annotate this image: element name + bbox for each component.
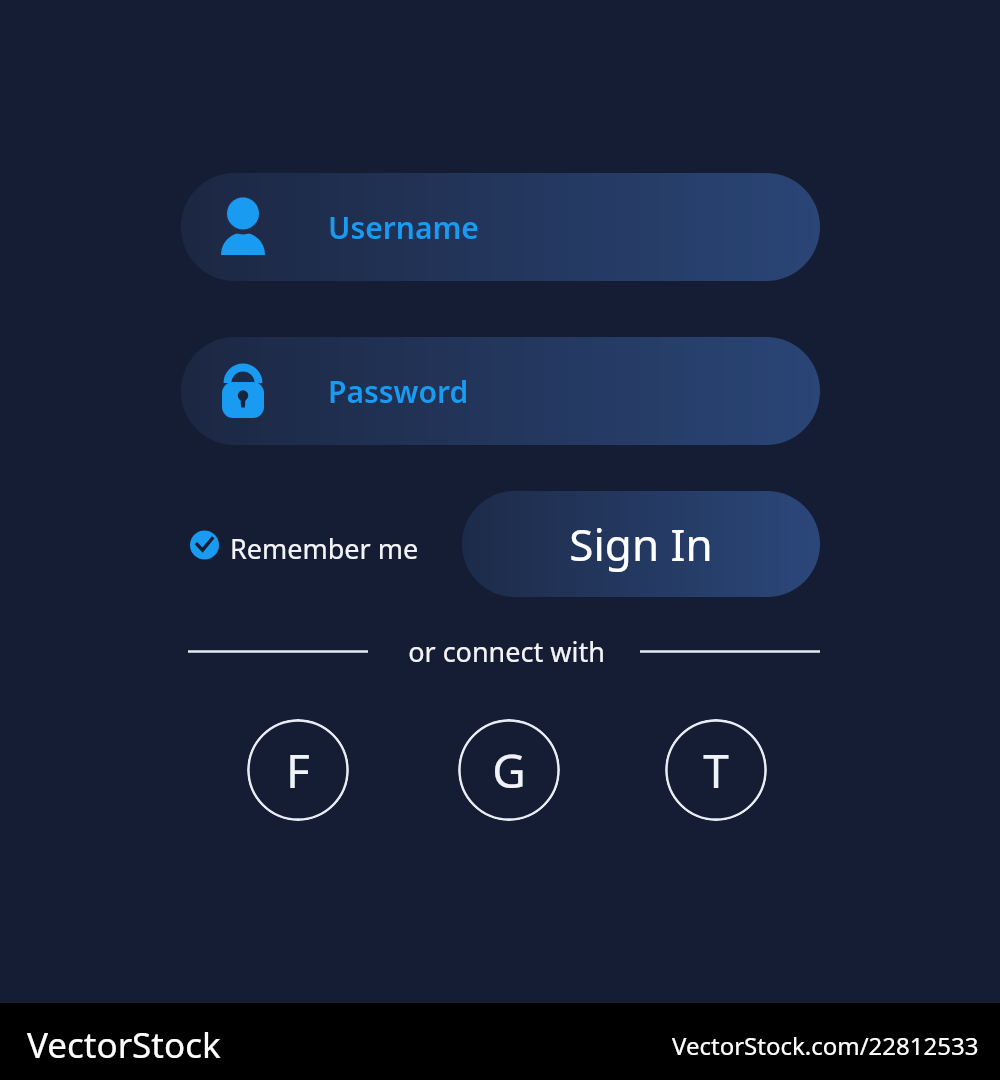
- button[interactable]: Sign in with Twitter: [665, 719, 767, 821]
- button[interactable]: Sign in with Facebook: [247, 719, 349, 821]
- staticText: Sign In: [569, 514, 713, 574]
- staticText: F: [286, 739, 310, 802]
- staticText: G: [492, 739, 526, 802]
- staticText: Remember me: [230, 530, 419, 567]
- staticText: VectorStock.com/22812533: [672, 1029, 979, 1062]
- button[interactable]: Username: [181, 173, 820, 281]
- staticText: Username: [328, 207, 479, 248]
- button[interactable]: Remember me: [188, 521, 432, 569]
- button[interactable]: Sign in with Google: [458, 719, 560, 821]
- staticText: or connect with: [408, 633, 605, 670]
- button[interactable]: Password: [181, 337, 820, 445]
- staticText: T: [703, 739, 729, 802]
- staticText: Password: [328, 371, 469, 412]
- staticText: VectorStock: [27, 1021, 221, 1069]
- button[interactable]: Sign In: [462, 491, 820, 597]
